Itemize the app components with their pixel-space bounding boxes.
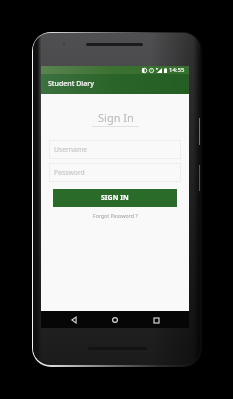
button[interactable]: Password [49,163,181,182]
staticText: SIGN IN [101,193,129,203]
button[interactable]: Home [107,312,123,328]
staticText: Username [54,145,88,154]
button[interactable]: Back [66,312,82,328]
button[interactable]: Forgot Password ? [93,212,138,219]
staticText: Password [54,168,85,177]
button[interactable]: SIGN IN [53,189,177,207]
staticText: Student Diary [48,79,94,89]
button[interactable]: Username [49,140,181,159]
staticText: 14:55 [169,66,185,74]
staticText: Sign In [98,110,134,125]
button[interactable]: Recent apps [148,312,164,328]
